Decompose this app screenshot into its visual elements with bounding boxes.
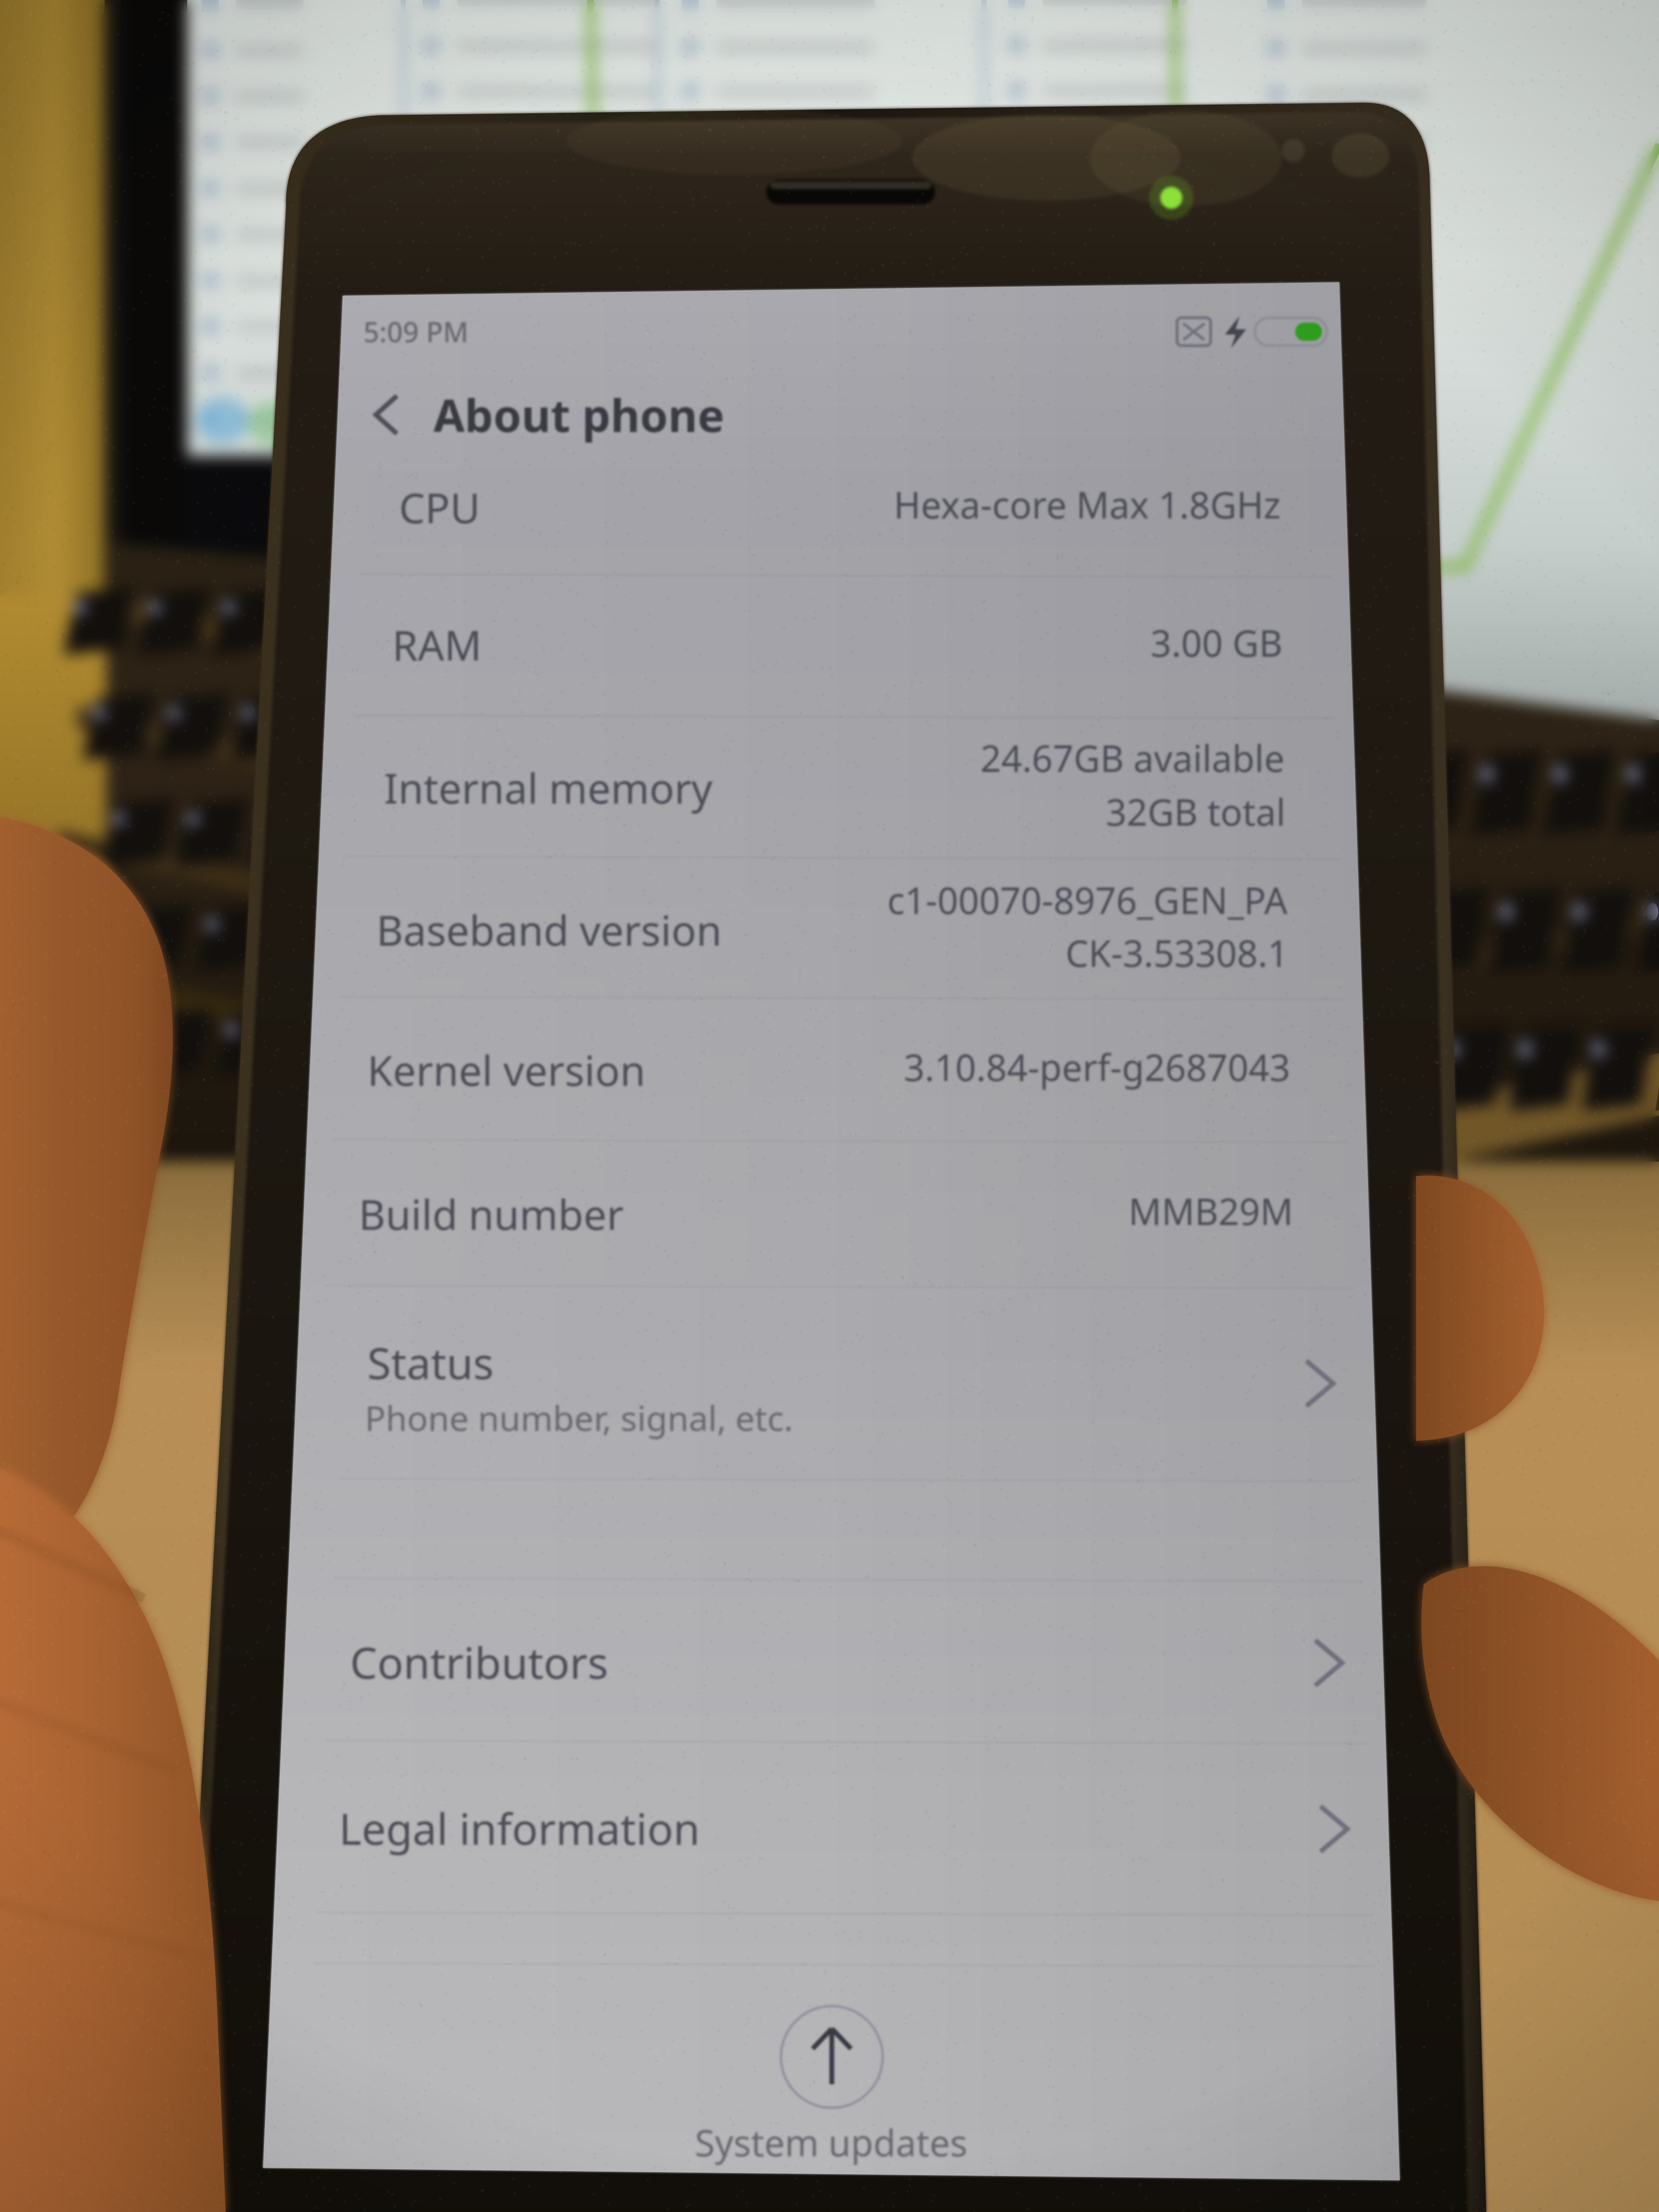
staticText: Build number — [359, 1186, 624, 1242]
staticText: 32GB total — [517, 787, 1286, 837]
staticText: About phone — [433, 384, 725, 445]
staticText: 3.10.84-perf-g2687043 — [522, 1042, 1290, 1092]
staticText: System updates — [264, 2117, 1398, 2167]
staticText: CPU — [399, 479, 481, 535]
button[interactable] — [277, 1741, 1388, 1911]
button[interactable] — [322, 715, 1356, 854]
staticText: c1-00070-8976_GEN_PA — [519, 875, 1287, 925]
staticText: Hexa-core Max 1.8GHz — [513, 480, 1281, 529]
staticText: 24.67GB available — [517, 733, 1285, 783]
staticText: Legal information — [339, 1799, 700, 1858]
staticText: Phone number, signal, etc. — [365, 1394, 793, 1441]
button[interactable] — [297, 1286, 1374, 1477]
staticText: MMB29M — [525, 1186, 1293, 1236]
staticText: Contributors — [350, 1633, 609, 1692]
staticText: Status — [367, 1333, 494, 1392]
button[interactable] — [267, 1987, 1396, 2170]
staticText: Internal memory — [384, 759, 713, 816]
button[interactable] — [328, 574, 1351, 713]
button[interactable] — [334, 435, 1346, 572]
staticText: 3.00 GB — [515, 618, 1283, 668]
staticText: 5:09 PM — [363, 313, 469, 350]
staticText: Kernel version — [367, 1042, 646, 1098]
staticText: CK-3.53308.1 — [520, 928, 1288, 978]
button[interactable] — [304, 1140, 1369, 1284]
button[interactable] — [285, 1578, 1383, 1740]
staticText: RAM — [392, 616, 482, 673]
button[interactable] — [310, 997, 1365, 1138]
staticText: Baseband version — [376, 902, 722, 958]
button[interactable] — [316, 856, 1360, 995]
button[interactable]: Back — [351, 377, 426, 452]
